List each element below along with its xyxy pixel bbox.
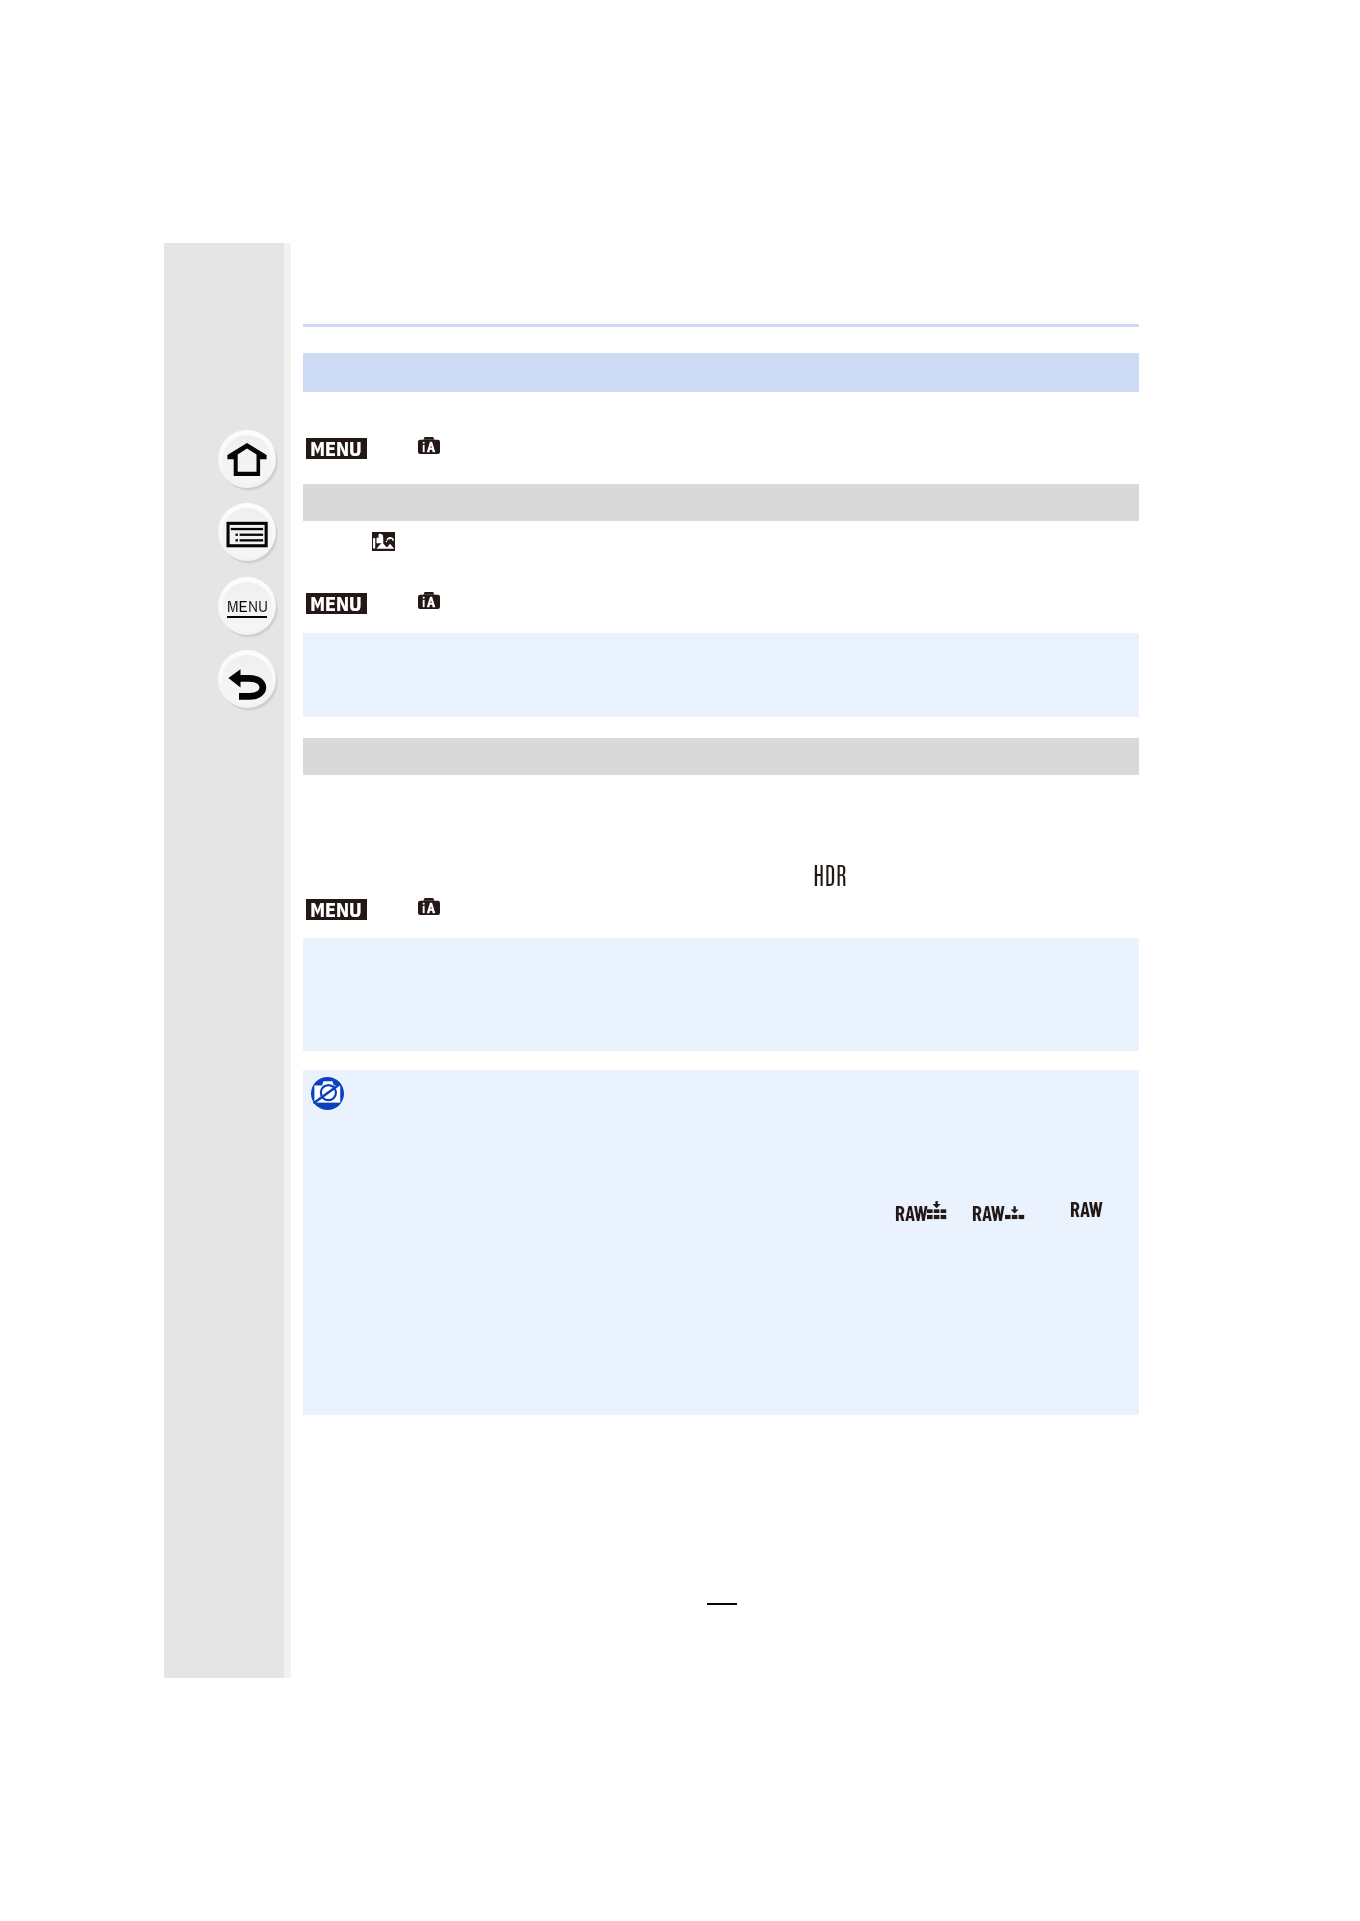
staticText: MENU <box>310 896 362 917</box>
button[interactable]: Back <box>218 650 276 708</box>
staticText: HDR <box>813 858 847 889</box>
button[interactable]: Menu <box>218 577 276 635</box>
staticText: RAW <box>972 1200 1005 1225</box>
staticText: RAW <box>895 1200 928 1225</box>
staticText: RAW <box>1070 1196 1103 1221</box>
button[interactable]: Contents <box>218 503 276 561</box>
staticText: MENU <box>310 435 362 456</box>
staticText: MENU <box>310 590 362 611</box>
staticText: MENU <box>227 594 269 617</box>
button[interactable]: Home <box>218 430 276 488</box>
